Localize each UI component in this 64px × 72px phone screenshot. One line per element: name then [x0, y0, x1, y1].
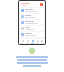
button[interactable]: Library — [30, 39, 35, 44]
button[interactable]: Search — [25, 39, 30, 44]
button[interactable]: Profile — [40, 39, 44, 44]
button[interactable] — [20, 14, 44, 19]
button[interactable]: Home — [20, 39, 25, 44]
button[interactable]: Action — [40, 3, 43, 6]
button[interactable] — [20, 26, 44, 31]
button[interactable] — [20, 20, 44, 25]
button[interactable]: Logo — [29, 48, 35, 54]
button[interactable] — [20, 32, 44, 37]
button[interactable] — [20, 8, 44, 13]
button[interactable]: Alerts — [35, 39, 40, 44]
